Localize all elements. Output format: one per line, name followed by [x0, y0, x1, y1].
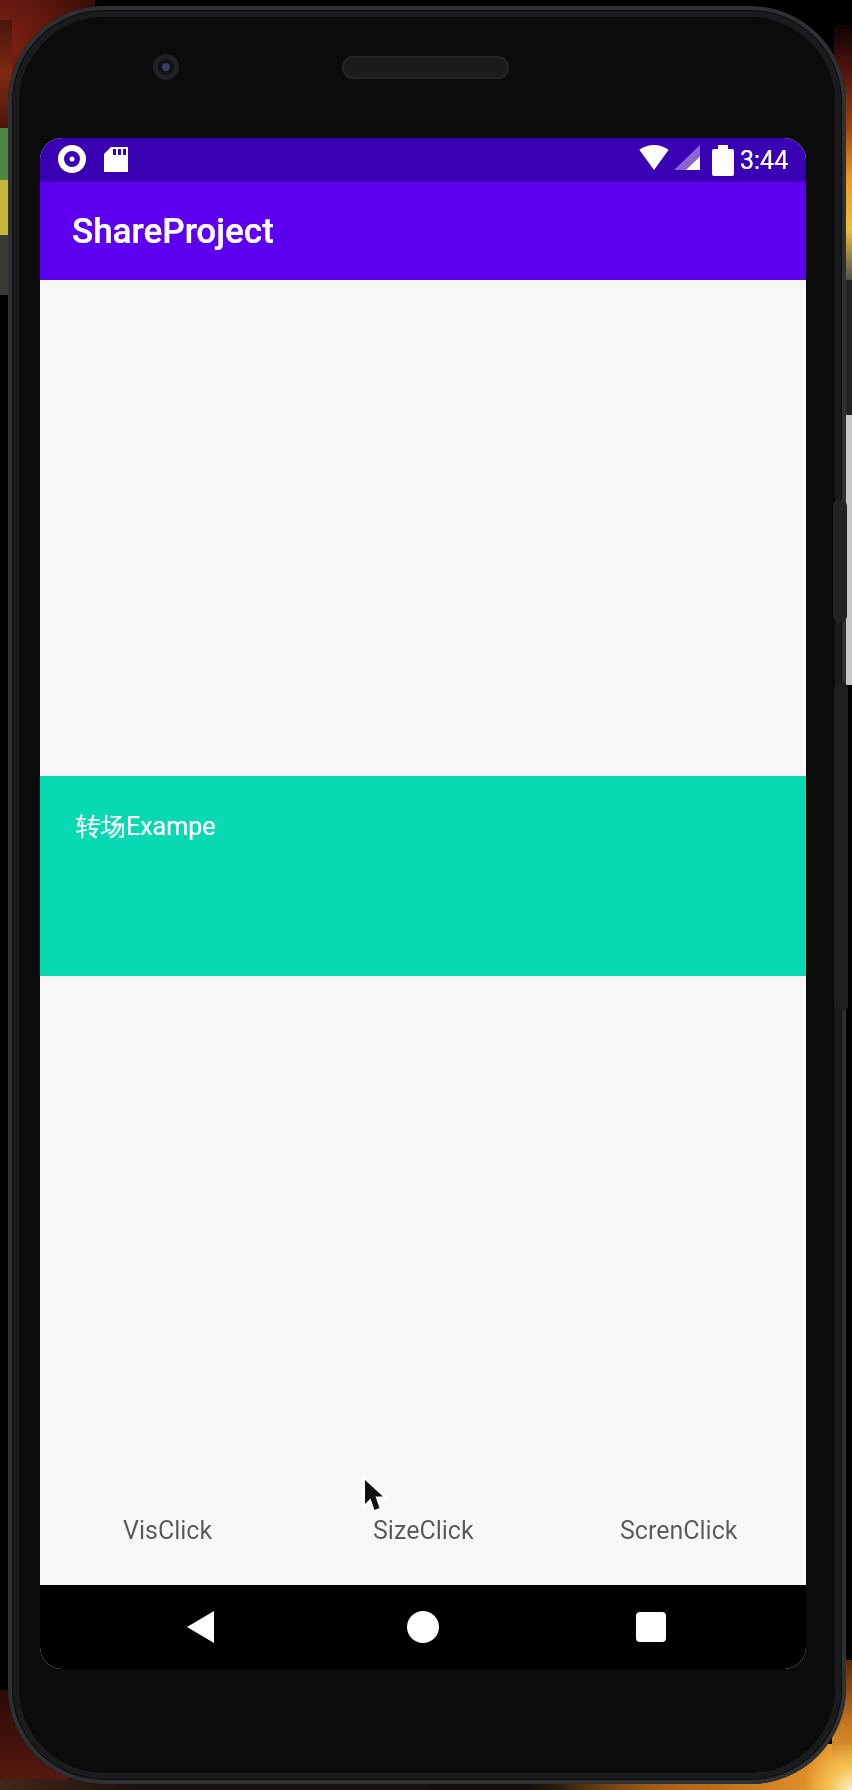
- button[interactable]: ScrenClick: [551, 1516, 806, 1545]
- staticText: ShareProject: [72, 211, 274, 252]
- staticText: VisClick: [123, 1516, 213, 1545]
- staticText: ScrenClick: [620, 1516, 738, 1545]
- button[interactable]: [551, 1585, 806, 1669]
- button[interactable]: [296, 1585, 551, 1669]
- staticText: 3:44: [740, 146, 789, 175]
- staticText: SizeClick: [373, 1516, 474, 1545]
- button[interactable]: 转场Exampe: [40, 776, 806, 976]
- button[interactable]: VisClick: [40, 1516, 296, 1545]
- staticText: 转场Exampe: [76, 811, 216, 842]
- button[interactable]: SizeClick: [296, 1516, 551, 1545]
- button[interactable]: [40, 1585, 296, 1669]
